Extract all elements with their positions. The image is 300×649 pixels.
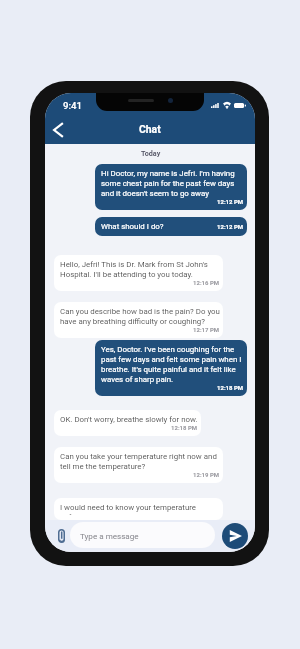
- staticText: 9:41: [63, 100, 82, 111]
- button[interactable]: Hi Doctor, my name is Jefri. I'm having …: [95, 164, 247, 210]
- staticText: 12:18 PM: [171, 424, 198, 431]
- staticText: 12:12 PM: [217, 198, 244, 205]
- staticText: Can you describe how bad is the pain? Do…: [60, 307, 220, 326]
- staticText: 12:16 PM: [193, 279, 220, 286]
- staticText: 12:12 PM: [217, 223, 244, 230]
- staticText: OK. Don't worry, breathe slowly for now.: [60, 415, 198, 424]
- staticText: What should I do?: [101, 222, 164, 231]
- button[interactable]: Send: [222, 523, 248, 549]
- staticText: 12:19 PM: [193, 471, 220, 478]
- staticText: Can you take your temperature right now …: [60, 452, 220, 471]
- staticText: Chat: [139, 123, 161, 135]
- button[interactable]: Back: [45, 114, 71, 145]
- staticText: 12:18 PM: [217, 384, 244, 391]
- staticText: Today: [141, 149, 161, 157]
- button[interactable]: Can you take your temperature right now …: [54, 447, 223, 483]
- button[interactable]: OK. Don't worry, breathe slowly for now.: [54, 410, 201, 436]
- button[interactable]: Yes, Doctor. I've been coughing for the …: [95, 340, 247, 396]
- button[interactable]: Attach file: [48, 523, 74, 549]
- staticText: I would need to know your temperature be…: [60, 503, 220, 515]
- staticText: 12:17 PM: [193, 326, 220, 333]
- staticText: Hello, Jefri! This is Dr. Mark from St J…: [60, 260, 220, 279]
- button[interactable]: Type a message: [70, 522, 215, 548]
- button[interactable]: What should I do?: [95, 217, 247, 236]
- staticText: Type a message: [80, 531, 139, 540]
- button[interactable]: Can you describe how bad is the pain? Do…: [54, 302, 223, 338]
- button[interactable]: Hello, Jefri! This is Dr. Mark from St J…: [54, 255, 223, 291]
- staticText: Hi Doctor, my name is Jefri. I'm having …: [101, 169, 244, 198]
- button[interactable]: I would need to know your temperature be…: [54, 498, 223, 520]
- staticText: Yes, Doctor. I've been coughing for the …: [101, 345, 244, 384]
